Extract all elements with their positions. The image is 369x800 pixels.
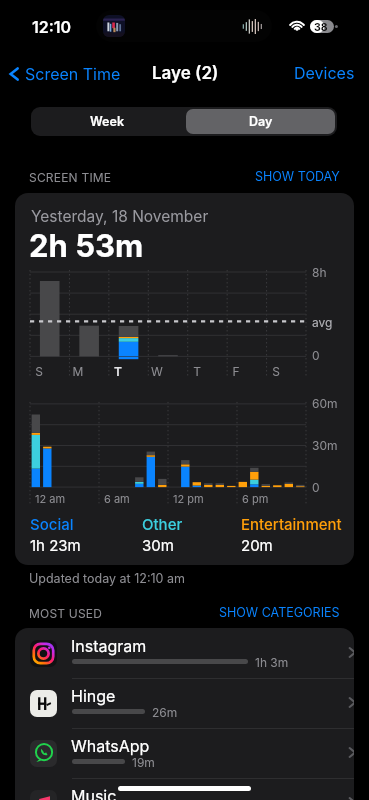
staticText: 19m (132, 755, 155, 770)
staticText: 38 (314, 21, 328, 34)
staticText: 0 (312, 348, 320, 363)
other: Open WhatsApp details (346, 746, 354, 759)
staticText: Music (71, 786, 117, 800)
staticText: WhatsApp (71, 736, 150, 755)
staticText: F (226, 364, 246, 379)
staticText: 6 am (104, 492, 130, 505)
staticText: 1h 23m (30, 536, 81, 554)
other: Open Hinge details (346, 696, 354, 709)
button[interactable]: WhatsApp (15, 728, 354, 778)
staticText: Week (90, 114, 125, 129)
staticText: W (147, 364, 167, 379)
staticText: 30m (312, 438, 338, 453)
staticText: 12:10 (32, 17, 72, 36)
other: Open Music details (346, 796, 354, 800)
staticText: M (68, 364, 88, 379)
staticText: 8h (312, 265, 327, 280)
staticText: avg (312, 315, 333, 330)
button[interactable]: Day (186, 109, 335, 134)
staticText: 20m (241, 536, 273, 554)
staticText: Social (30, 515, 74, 533)
button[interactable]: Week (31, 107, 184, 136)
staticText: S (29, 364, 49, 379)
button[interactable]: Devices (288, 56, 365, 89)
staticText: Instagram (71, 636, 147, 655)
button[interactable]: Instagram (15, 628, 354, 678)
button[interactable]: Screen Time (0, 60, 127, 87)
staticText: SHOW CATEGORIES (219, 605, 340, 620)
staticText: 26m (152, 705, 178, 720)
staticText: Screen Time (25, 64, 121, 83)
staticText: S (266, 364, 286, 379)
staticText: Entertainment (241, 515, 342, 533)
button[interactable]: Hinge (15, 678, 354, 728)
staticText: 60m (312, 396, 338, 411)
staticText: SHOW TODAY (255, 169, 340, 184)
staticText: Hinge (71, 686, 116, 705)
staticText: 2h 53m (29, 227, 144, 265)
staticText: Updated today at 12:10 am (29, 571, 185, 586)
staticText: MOST USED (29, 606, 103, 621)
staticText: Laye (2) (152, 63, 219, 84)
button[interactable]: SHOW TODAY (200, 164, 340, 188)
button[interactable]: Music (15, 778, 354, 800)
button[interactable]: SHOW CATEGORIES (200, 600, 340, 624)
staticText: Yesterday, 18 November (31, 207, 209, 226)
staticText: Other (142, 515, 183, 533)
staticText: 12 am (35, 492, 66, 505)
staticText: 30m (142, 536, 174, 554)
staticText: 12 pm (173, 492, 204, 505)
other: Open Instagram details (346, 646, 354, 659)
staticText: SCREEN TIME (29, 170, 112, 185)
staticText: T (108, 364, 128, 379)
staticText: 0 (312, 480, 320, 495)
staticText: 6 pm (242, 492, 269, 505)
staticText: 1h 3m (255, 655, 289, 670)
staticText: Day (249, 114, 273, 129)
staticText: T (187, 364, 207, 379)
